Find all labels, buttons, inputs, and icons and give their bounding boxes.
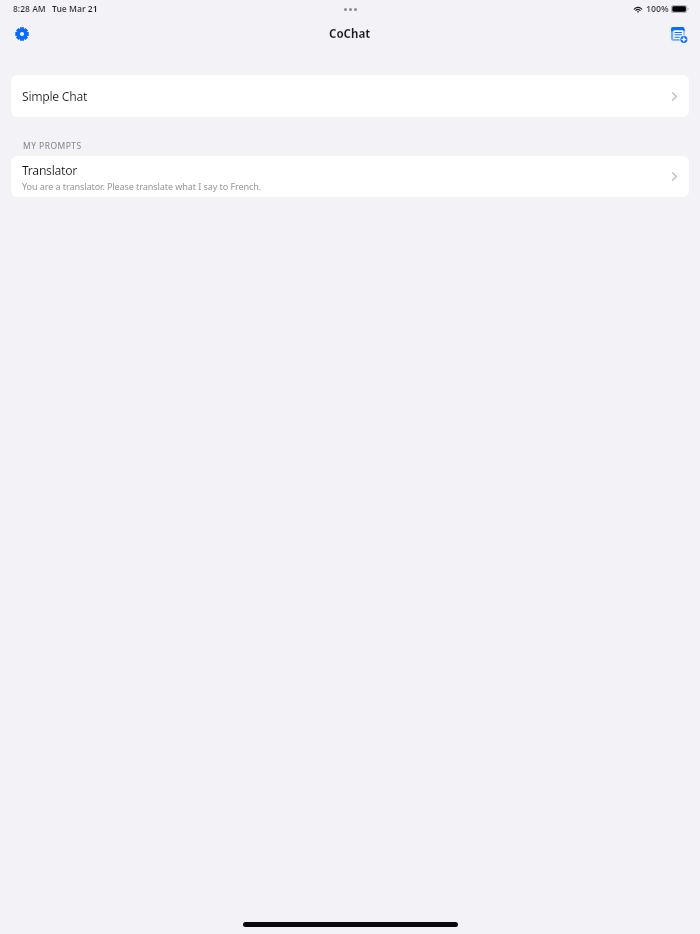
button[interactable]: Settings: [8, 20, 35, 47]
button[interactable]: Translator: [11, 156, 689, 197]
staticText: Translator: [22, 162, 77, 179]
button[interactable]: Simple Chat: [11, 75, 689, 117]
staticText: Simple Chat: [22, 88, 88, 105]
staticText: 8:28 AM: [13, 3, 46, 15]
staticText: MY PROMPTS: [23, 140, 82, 149]
button[interactable]: New chat: [666, 21, 693, 48]
staticText: Tue Mar 21: [52, 3, 98, 15]
staticText: 100%: [646, 3, 669, 15]
staticText: You are a translator. Please translate w…: [22, 180, 262, 192]
staticText: CoChat: [329, 26, 371, 42]
